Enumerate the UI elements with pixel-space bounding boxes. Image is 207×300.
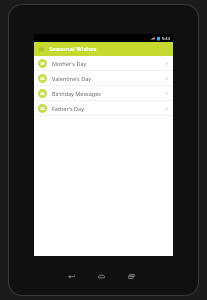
button[interactable]: Valentine's Day [34, 71, 173, 85]
staticText: Father's Day [52, 105, 164, 112]
button[interactable]: Father's Day [34, 101, 173, 115]
button[interactable]: Recent apps [121, 269, 141, 283]
button[interactable]: Birthday Messages [34, 86, 173, 100]
button[interactable]: Back [61, 269, 81, 283]
staticText: Mother's Day [52, 60, 164, 67]
staticText: Valentine's Day [52, 75, 164, 82]
button[interactable]: Seasonal Wishes [34, 42, 173, 56]
button[interactable]: Mother's Day [34, 56, 173, 70]
staticText: 5:43 [162, 36, 170, 41]
staticText: Seasonal Wishes [49, 45, 97, 53]
staticText: Birthday Messages [52, 90, 164, 97]
button[interactable]: Home [91, 269, 111, 283]
